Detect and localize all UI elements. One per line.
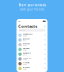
staticText: Mobile [23,49,27,51]
button[interactable]: Daniel Ford [16,52,47,57]
button[interactable]: Adam Brooks [16,33,47,38]
staticText: Contacts [18,23,37,29]
staticText: Search [19,29,25,31]
staticText: Daniel Ford [23,52,31,54]
button[interactable]: Claire Diaz [16,47,47,52]
staticText: Work [23,54,27,56]
staticText: 9:41 [18,20,21,22]
staticText: Adam Brooks [23,33,33,35]
staticText: Work [23,40,27,42]
staticText: Alice Chen [23,38,30,40]
staticText: Grace Ito [23,67,30,68]
staticText: Frank Hill [23,62,29,64]
staticText: Mobile [23,59,27,61]
staticText: Mobile [23,35,27,37]
staticText: Home [23,45,27,46]
button[interactable]: Brian Cole [16,42,47,47]
button[interactable]: Frank Hill [16,61,47,66]
staticText: + [44,24,46,28]
staticText: Home [23,64,27,65]
staticText: Claire Diaz [23,48,30,49]
staticText: Mobile [23,68,27,70]
staticText: Share your contacts [18,3,45,7]
staticText: Emma Grant [23,57,32,59]
staticText: Brian Cole [23,43,30,45]
button[interactable]: Grace Ito [16,66,47,71]
staticText: with your friends [20,8,44,11]
button[interactable]: Alice Chen [16,37,47,42]
button[interactable]: Emma Grant [16,56,47,61]
